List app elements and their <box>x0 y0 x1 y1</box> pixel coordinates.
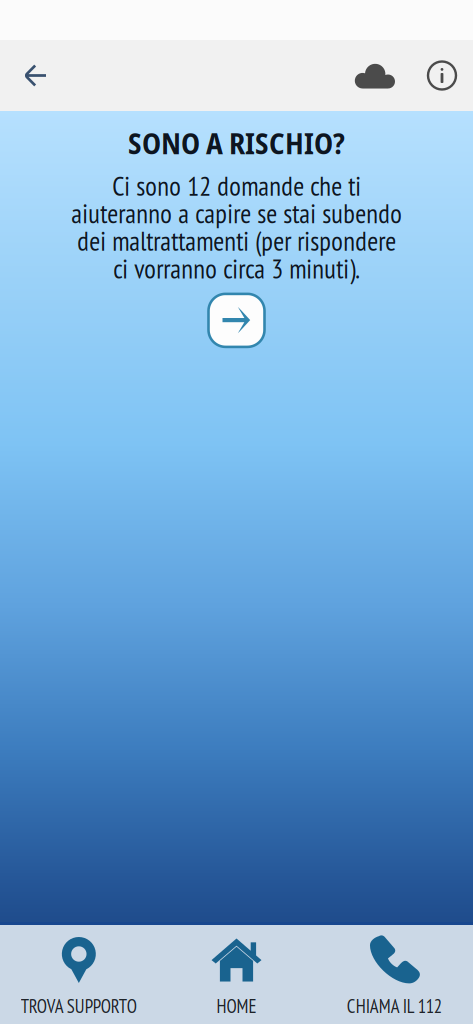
button[interactable]: Informazioni <box>411 40 473 111</box>
staticText: SONO A RISCHIO? <box>128 123 345 163</box>
staticText: Ci sono 12 domande che ti aiuteranno a c… <box>71 172 402 282</box>
button[interactable]: CHIAMA IL 112 <box>315 925 473 1024</box>
button[interactable]: Indietro <box>0 40 71 111</box>
staticText: TROVA SUPPORTO <box>21 994 137 1018</box>
staticText: CHIAMA IL 112 <box>347 994 442 1018</box>
button[interactable]: Meteo <box>339 40 411 111</box>
staticText: HOME <box>216 994 256 1018</box>
button[interactable]: Inizia il questionario <box>204 289 268 351</box>
button[interactable]: TROVA SUPPORTO <box>0 925 158 1024</box>
button[interactable]: HOME <box>158 925 315 1024</box>
